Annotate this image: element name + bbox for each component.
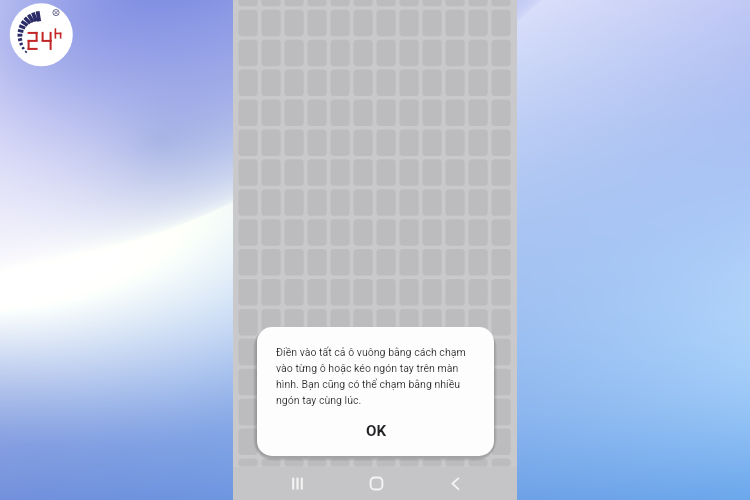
button[interactable]: Back (442, 467, 469, 500)
staticText: Điền vào tất cả ô vuông bằng cách chạm v… (276, 346, 472, 406)
button[interactable]: Home (363, 467, 390, 500)
button[interactable]: Recents (283, 467, 310, 500)
staticText: OK (366, 422, 387, 440)
button[interactable]: OK (350, 415, 402, 447)
